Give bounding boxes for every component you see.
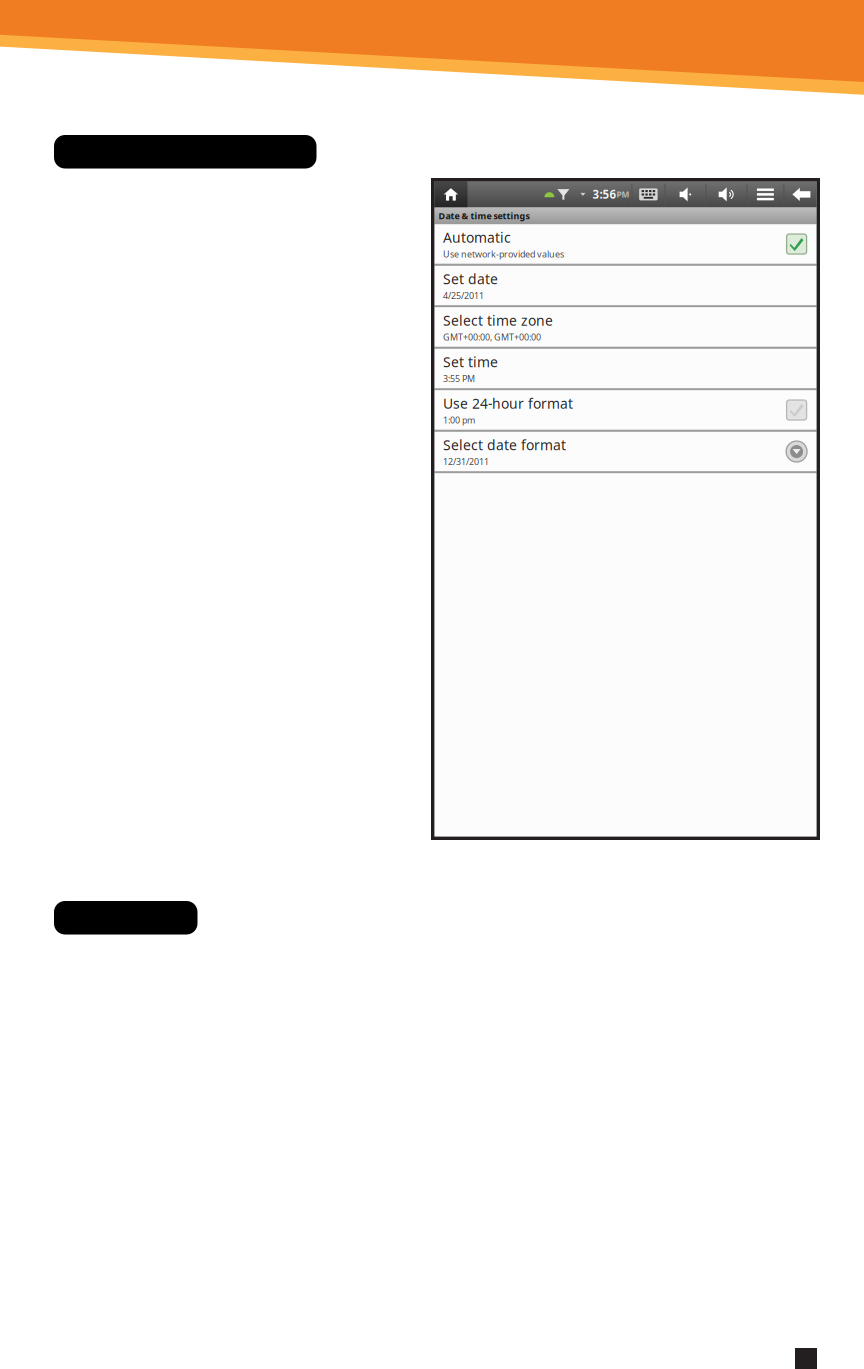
button[interactable]: Keyboard [632,181,664,207]
staticText: 1:00 pm [443,414,475,426]
staticText: GMT+00:00, GMT+00:00 [443,331,541,343]
staticText: Set time [443,352,498,371]
staticText: 3:56 [592,187,616,202]
staticText: 3:55 PM [443,372,475,385]
staticText: Automatic [443,228,511,247]
button[interactable]: Menu [747,181,783,207]
staticText: PM [616,189,629,200]
button[interactable]: Select time zone [434,307,817,349]
button[interactable]: Home [434,181,467,207]
staticText: 12/31/2011 [443,455,489,468]
button[interactable]: Volume down [665,181,705,207]
staticText: Select date format [443,435,566,454]
button[interactable]: Set date [434,266,817,307]
staticText: Set date [443,269,498,288]
staticText: 4/25/2011 [443,289,484,302]
staticText: Use 24-hour format [443,394,573,413]
staticText: Select time zone [443,311,553,330]
button[interactable]: Back [784,181,818,207]
button[interactable]: Use 24-hour format [434,390,817,432]
button[interactable]: Select date format [434,432,817,473]
button[interactable]: Set time [434,349,817,390]
button[interactable]: Volume up [706,181,746,207]
staticText: Use network-provided values [443,248,564,260]
button[interactable]: Automatic [434,224,817,266]
staticText: Date & time settings [438,210,529,222]
